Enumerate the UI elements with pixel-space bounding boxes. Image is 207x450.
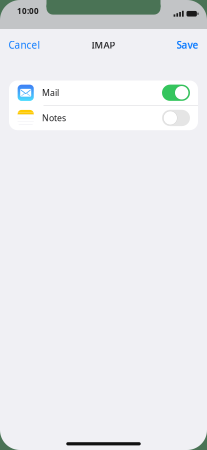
staticText: Notes — [42, 112, 66, 124]
staticText: Cancel — [8, 38, 40, 52]
button[interactable]: Mail — [9, 80, 198, 105]
button[interactable]: Cancel — [0, 33, 49, 57]
staticText: Save — [177, 38, 199, 52]
staticText: IMAP — [91, 39, 115, 51]
button[interactable]: Save — [168, 33, 207, 57]
button[interactable]: Notes — [9, 106, 198, 130]
staticText: Mail — [42, 87, 59, 99]
staticText: 10:00 — [17, 6, 39, 16]
